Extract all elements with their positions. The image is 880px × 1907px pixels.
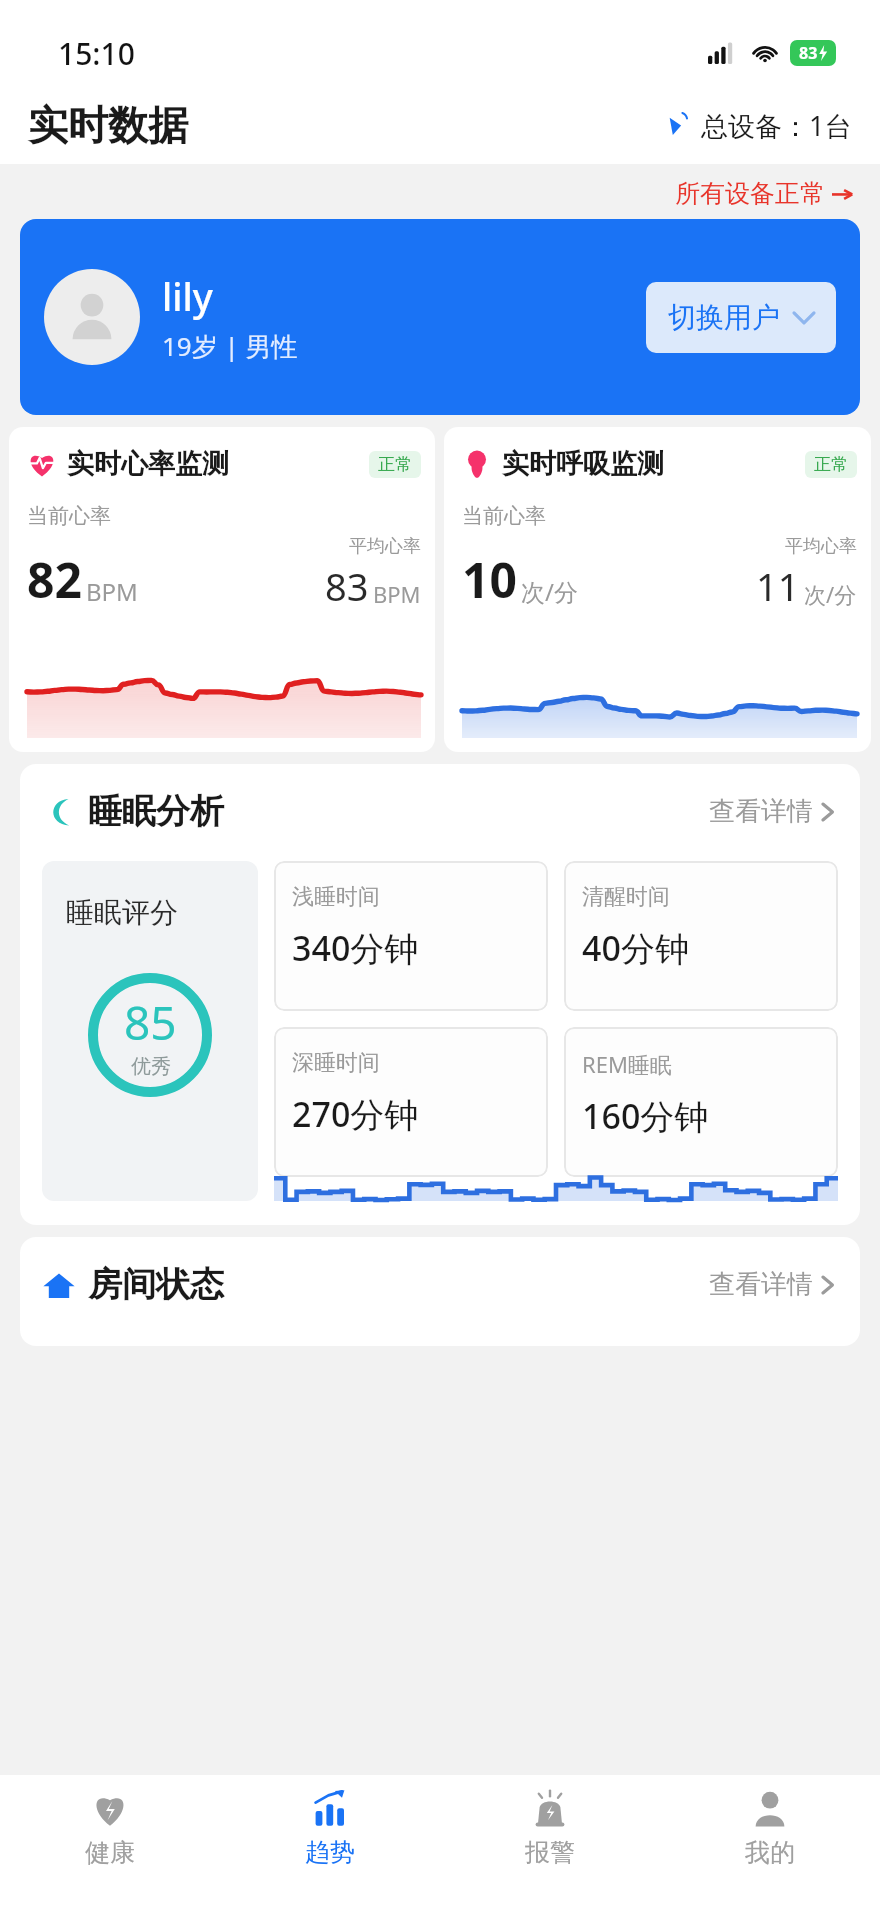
staticText: 实时呼吸监测 — [502, 447, 664, 481]
staticText: 10 — [462, 547, 517, 612]
button[interactable]: 查看详情 — [705, 791, 838, 832]
staticText: 健康 — [85, 1837, 135, 1868]
staticText: 我的 — [745, 1837, 795, 1868]
staticText: lily — [162, 270, 213, 322]
staticText: 19岁 | 男性 — [162, 328, 298, 364]
staticText: 340分钟 — [292, 925, 419, 971]
staticText: 浅睡时间 — [292, 883, 380, 911]
staticText: 平均心率 — [349, 535, 421, 558]
button[interactable]: 房间状态 — [20, 1237, 860, 1346]
staticText: 正常 — [378, 454, 412, 475]
staticText: 查看详情 — [709, 1268, 813, 1301]
button[interactable]: 实时呼吸监测 — [444, 427, 871, 752]
button[interactable]: 健康 — [0, 1775, 220, 1907]
staticText: 清醒时间 — [582, 883, 670, 911]
staticText: 查看详情 — [709, 795, 813, 828]
staticText: 总设备：1台 — [701, 107, 852, 144]
button[interactable]: 浅睡时间 — [274, 861, 548, 1011]
button[interactable]: 查看详情 — [705, 1264, 838, 1305]
staticText: BPM — [373, 579, 421, 609]
staticText: 趋势 — [305, 1837, 355, 1868]
button[interactable]: 我的 — [660, 1775, 880, 1907]
button[interactable]: 切换用户 — [646, 282, 836, 353]
staticText: 睡眠分析 — [88, 790, 224, 833]
staticText: 160分钟 — [582, 1093, 709, 1139]
staticText: 82 — [27, 547, 82, 612]
button[interactable]: 实时心率监测 — [9, 427, 435, 752]
staticText: 所有设备正常 — [675, 178, 825, 209]
staticText: 270分钟 — [292, 1091, 419, 1137]
staticText: 报警 — [525, 1837, 575, 1868]
button[interactable]: 睡眠分析 — [20, 764, 860, 1225]
button[interactable]: 趋势 — [220, 1775, 440, 1907]
staticText: 睡眠评分 — [66, 895, 178, 930]
staticText: 83 — [325, 560, 369, 612]
staticText: 85 — [124, 991, 177, 1054]
staticText: 40分钟 — [582, 925, 689, 971]
staticText: 实时数据 — [28, 100, 188, 150]
staticText: 平均心率 — [785, 535, 857, 558]
staticText: 15:10 — [58, 33, 135, 74]
staticText: 正常 — [814, 454, 848, 475]
staticText: 次/分 — [521, 575, 578, 608]
staticText: BPM — [86, 575, 138, 608]
button[interactable]: 清醒时间 — [564, 861, 838, 1011]
staticText: 实时心率监测 — [67, 447, 229, 481]
button[interactable]: lily — [20, 219, 860, 415]
staticText: 83 — [799, 42, 818, 64]
staticText: 次/分 — [804, 579, 857, 609]
staticText: 当前心率 — [27, 503, 111, 529]
staticText: 房间状态 — [88, 1263, 224, 1306]
button[interactable]: 报警 — [440, 1775, 660, 1907]
staticText: 11 — [756, 560, 800, 612]
button[interactable]: 所有设备正常 — [0, 164, 880, 219]
button[interactable]: 深睡时间 — [274, 1027, 548, 1177]
staticText: 切换用户 — [668, 300, 780, 335]
staticText: REM睡眠 — [582, 1049, 672, 1079]
button[interactable]: REM睡眠 — [564, 1027, 838, 1177]
staticText: 深睡时间 — [292, 1049, 380, 1077]
staticText: 优秀 — [131, 1054, 171, 1079]
staticText: 当前心率 — [462, 503, 546, 529]
